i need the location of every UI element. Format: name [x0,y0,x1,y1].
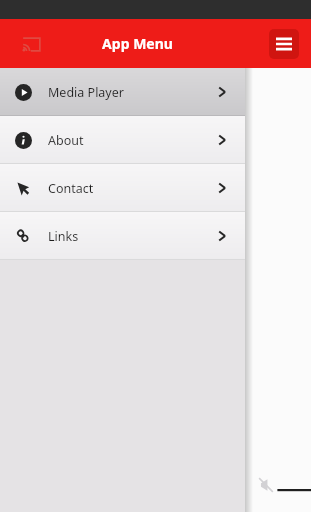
button[interactable]: Links [0,212,245,260]
staticText: Links [48,228,79,245]
button[interactable]: About [0,116,245,164]
staticText: About [48,132,84,149]
staticText: App Menu [102,34,173,53]
staticText: Contact [48,180,94,197]
button[interactable]: Cast [16,29,46,59]
button[interactable]: Open navigation menu [269,29,299,59]
staticText: Media Player [48,84,124,101]
button[interactable]: Contact [0,164,245,212]
button[interactable]: Media Player [0,68,245,116]
